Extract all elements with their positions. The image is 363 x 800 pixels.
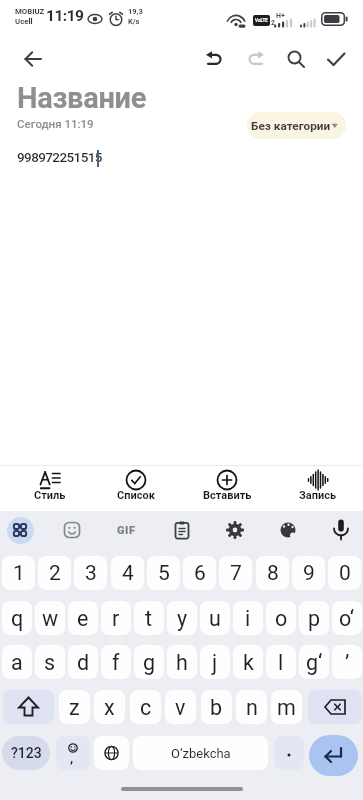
button[interactable]: f — [101, 645, 131, 679]
button[interactable]: 3 — [74, 556, 107, 590]
button[interactable] — [91, 466, 181, 510]
button[interactable]: 1 — [2, 556, 35, 590]
button[interactable]: q — [2, 601, 32, 635]
staticText: r — [112, 606, 120, 631]
button[interactable] — [162, 510, 202, 550]
button[interactable]: y — [167, 601, 197, 635]
button[interactable]: t — [134, 601, 164, 635]
staticText: l — [278, 650, 284, 675]
staticText: H+ — [276, 12, 285, 20]
button[interactable]: 0 — [328, 556, 361, 590]
staticText: 2 — [271, 19, 275, 27]
staticText: 6 — [194, 561, 206, 586]
button[interactable] — [182, 466, 272, 510]
button[interactable] — [3, 690, 54, 724]
button[interactable]: 6 — [183, 556, 216, 590]
staticText: Стиль — [34, 489, 66, 502]
staticText: , — [70, 751, 74, 766]
staticText: v — [175, 695, 186, 720]
button[interactable] — [5, 466, 95, 510]
staticText: p — [308, 606, 321, 631]
button[interactable] — [94, 736, 129, 770]
staticText: g — [143, 650, 156, 675]
button[interactable]: ?123 — [2, 736, 50, 770]
staticText: 0 — [339, 561, 351, 586]
button[interactable] — [284, 47, 308, 71]
staticText: h — [176, 650, 188, 675]
button[interactable] — [52, 510, 92, 550]
button[interactable] — [309, 735, 358, 776]
button[interactable]: k — [233, 645, 263, 679]
button[interactable]: o — [266, 601, 296, 635]
staticText: z — [69, 695, 80, 720]
staticText: GIF — [117, 524, 136, 537]
button[interactable] — [274, 736, 304, 770]
staticText: ’ — [345, 650, 350, 675]
button[interactable]: u — [200, 601, 230, 635]
button[interactable] — [324, 47, 348, 71]
button[interactable]: x — [94, 690, 125, 724]
button[interactable]: i — [233, 601, 263, 635]
button[interactable] — [308, 690, 362, 724]
button[interactable]: g‘ — [299, 645, 329, 679]
button[interactable]: GIF — [106, 510, 146, 550]
staticText: 19,3 — [128, 7, 143, 16]
staticText: s — [44, 650, 56, 675]
button[interactable] — [7, 517, 34, 544]
button[interactable]: ’ — [332, 645, 362, 679]
button[interactable]: Без категории — [247, 112, 346, 139]
button[interactable]: l — [266, 645, 296, 679]
button[interactable]: 2 — [38, 556, 71, 590]
staticText: 11:19 — [46, 7, 84, 25]
staticText: ?123 — [11, 745, 42, 761]
staticText: e — [77, 606, 89, 631]
button[interactable] — [20, 47, 44, 71]
button[interactable] — [56, 736, 90, 770]
button[interactable]: s — [35, 645, 65, 679]
staticText: 3 — [85, 561, 97, 586]
staticText: m — [277, 695, 296, 720]
button[interactable]: z — [59, 690, 90, 724]
button[interactable] — [243, 47, 267, 71]
button[interactable]: 8 — [256, 556, 289, 590]
button[interactable]: d — [68, 645, 98, 679]
staticText: g‘ — [306, 650, 323, 675]
staticText: 1 — [13, 561, 25, 586]
button[interactable]: n — [236, 690, 267, 724]
staticText: q — [11, 606, 24, 631]
staticText: 5 — [158, 561, 170, 586]
button[interactable]: g — [134, 645, 164, 679]
button[interactable]: r — [101, 601, 131, 635]
button[interactable]: h — [167, 645, 197, 679]
button[interactable]: m — [271, 690, 302, 724]
button[interactable]: a — [2, 645, 32, 679]
button[interactable]: 7 — [219, 556, 252, 590]
button[interactable] — [268, 510, 308, 550]
button[interactable]: o‘ — [332, 601, 362, 635]
button[interactable] — [321, 510, 361, 550]
staticText: x — [104, 695, 115, 720]
button[interactable]: v — [165, 690, 196, 724]
button[interactable]: O‘zbekcha — [133, 736, 268, 770]
staticText: 7 — [230, 561, 242, 586]
staticText: u — [209, 606, 221, 631]
staticText: O‘zbekcha — [171, 746, 231, 761]
button[interactable]: j — [200, 645, 230, 679]
button[interactable] — [203, 47, 227, 71]
button[interactable] — [215, 510, 255, 550]
staticText: d — [77, 650, 90, 675]
button[interactable]: 4 — [111, 556, 144, 590]
staticText: k — [243, 650, 254, 675]
button[interactable]: e — [68, 601, 98, 635]
staticText: Вставить — [203, 489, 252, 502]
button[interactable]: p — [299, 601, 329, 635]
button[interactable]: 9 — [292, 556, 325, 590]
staticText: t — [145, 606, 153, 631]
button[interactable]: w — [35, 601, 65, 635]
staticText: Без категории — [251, 119, 331, 133]
button[interactable]: c — [130, 690, 161, 724]
staticText: K/s — [128, 17, 140, 26]
button[interactable] — [273, 466, 363, 510]
button[interactable]: b — [201, 690, 232, 724]
button[interactable]: 5 — [147, 556, 180, 590]
